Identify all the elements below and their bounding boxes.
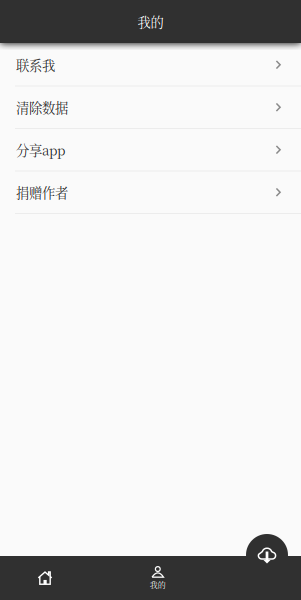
button[interactable]: 分享app [0, 129, 301, 171]
button[interactable]: 首页 [0, 556, 90, 600]
staticText: 我的 [150, 579, 166, 590]
staticText: 清除数据 [16, 98, 68, 117]
staticText: 联系我 [16, 55, 55, 74]
button[interactable]: 联系我 [0, 44, 301, 86]
button[interactable]: 下载 [246, 534, 288, 576]
staticText: 我的 [137, 12, 163, 31]
button[interactable]: 清除数据 [0, 86, 301, 129]
staticText: 分享app [16, 140, 66, 159]
button[interactable]: 捐赠作者 [0, 171, 301, 214]
button[interactable]: 我的 [113, 556, 203, 600]
staticText: 捐赠作者 [16, 183, 68, 202]
